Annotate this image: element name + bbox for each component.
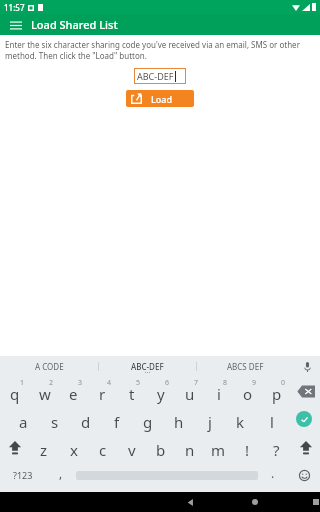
staticText: r: [99, 384, 106, 404]
staticText: ABC-DEF: [131, 361, 164, 372]
staticText: 0: [281, 378, 286, 388]
staticText: ?: [273, 440, 280, 460]
staticText: d: [81, 412, 91, 432]
staticText: m: [211, 440, 226, 460]
button[interactable]: 1: [0, 377, 30, 405]
button[interactable]: j: [194, 405, 225, 433]
button[interactable]: c: [88, 433, 117, 461]
button[interactable]: Home: [247, 494, 263, 510]
staticText: 11:57: [4, 2, 25, 13]
button[interactable]: ABCS DEF: [197, 356, 294, 377]
button[interactable]: !: [233, 433, 262, 461]
button[interactable]: 2: [30, 377, 59, 405]
button[interactable]: ABC-DEF: [99, 356, 196, 377]
button[interactable]: a: [7, 405, 39, 433]
button[interactable]: Load: [126, 90, 194, 107]
staticText: Load: [151, 93, 173, 105]
button[interactable]: 8: [204, 377, 233, 405]
staticText: t: [129, 384, 135, 404]
button[interactable]: 4: [88, 377, 117, 405]
button[interactable]: Open navigation menu: [6, 15, 26, 35]
button[interactable]: ?: [262, 433, 291, 461]
button[interactable]: 0: [262, 377, 291, 405]
staticText: v: [128, 440, 136, 460]
button[interactable]: ABC-DEF: [134, 68, 186, 84]
button[interactable]: 9: [233, 377, 262, 405]
staticText: i: [217, 384, 221, 404]
button[interactable]: l: [256, 405, 287, 433]
button[interactable]: h: [163, 405, 194, 433]
staticText: 4: [107, 378, 112, 388]
staticText: 9: [252, 378, 257, 388]
button[interactable]: Space: [76, 461, 258, 489]
button[interactable]: Emoji: [288, 461, 320, 489]
button[interactable]: x: [59, 433, 88, 461]
staticText: y: [157, 384, 165, 404]
button[interactable]: ,: [46, 461, 76, 489]
staticText: q: [10, 384, 20, 404]
staticText: 3: [78, 378, 83, 388]
button[interactable]: v: [117, 433, 146, 461]
button[interactable]: f: [101, 405, 132, 433]
staticText: e: [69, 384, 78, 404]
button[interactable]: k: [225, 405, 256, 433]
staticText: s: [51, 412, 59, 432]
button[interactable]: Enter: [287, 405, 320, 433]
button[interactable]: b: [146, 433, 175, 461]
button[interactable]: Shift: [291, 433, 320, 461]
button[interactable]: 3: [59, 377, 88, 405]
button[interactable]: m: [204, 433, 233, 461]
staticText: o: [243, 384, 253, 404]
staticText: h: [174, 412, 184, 432]
staticText: g: [143, 412, 153, 432]
staticText: n: [185, 440, 195, 460]
button[interactable]: s: [39, 405, 70, 433]
staticText: u: [185, 384, 195, 404]
button[interactable]: Back: [182, 494, 198, 510]
button[interactable]: .: [258, 461, 288, 489]
staticText: .: [271, 465, 275, 481]
staticText: w: [39, 384, 51, 404]
staticText: 8: [223, 378, 228, 388]
staticText: k: [236, 412, 245, 432]
staticText: a: [19, 412, 28, 432]
staticText: 1: [20, 378, 25, 388]
button[interactable]: Backspace: [291, 377, 320, 405]
staticText: f: [114, 412, 120, 432]
button[interactable]: d: [70, 405, 101, 433]
button[interactable]: g: [132, 405, 163, 433]
button[interactable]: Voice input: [294, 356, 320, 377]
button[interactable]: A CODE: [0, 356, 98, 377]
staticText: b: [156, 440, 166, 460]
staticText: Load Shared List: [31, 17, 118, 32]
staticText: p: [272, 384, 282, 404]
button[interactable]: z: [29, 433, 59, 461]
staticText: !: [245, 440, 250, 460]
staticText: ABCS DEF: [227, 361, 264, 372]
button[interactable]: ?123: [0, 461, 46, 489]
button[interactable]: 5: [117, 377, 146, 405]
staticText: j: [208, 412, 212, 432]
staticText: ABC-DEF: [137, 70, 174, 82]
button[interactable]: Recent apps: [308, 494, 320, 510]
staticText: l: [270, 412, 274, 432]
button[interactable]: Shift: [0, 433, 29, 461]
staticText: ,: [59, 465, 63, 481]
staticText: 7: [194, 378, 199, 388]
staticText: z: [40, 440, 48, 460]
button[interactable]: 7: [175, 377, 204, 405]
staticText: c: [99, 440, 107, 460]
staticText: 5: [136, 378, 141, 388]
staticText: Enter the six character sharing code you…: [5, 39, 314, 61]
staticText: 2: [49, 378, 54, 388]
staticText: A CODE: [35, 361, 64, 372]
staticText: ?123: [13, 469, 33, 481]
button[interactable]: 6: [146, 377, 175, 405]
button[interactable]: n: [175, 433, 204, 461]
staticText: x: [70, 440, 78, 460]
staticText: 6: [165, 378, 170, 388]
